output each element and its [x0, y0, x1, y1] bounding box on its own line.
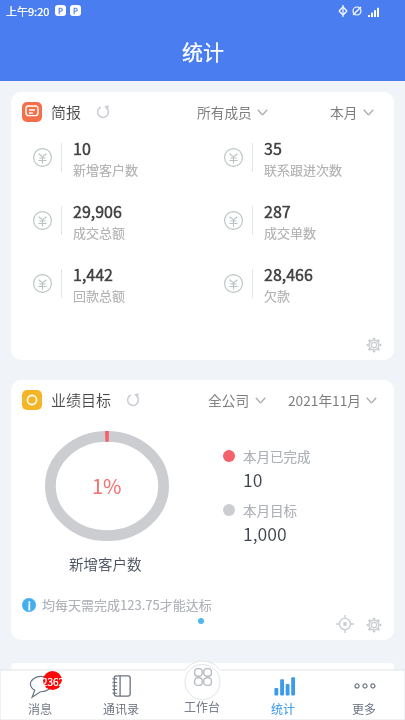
- staticText: 本月: [330, 102, 358, 122]
- staticText: 2362: [36, 674, 70, 688]
- staticText: 联系跟进次数: [264, 160, 343, 179]
- button[interactable]: 刷新: [94, 103, 112, 121]
- staticText: i: [28, 598, 31, 612]
- staticText: 成交总额: [73, 223, 126, 242]
- staticText: 10: [73, 136, 91, 159]
- staticText: 287: [264, 199, 291, 222]
- button[interactable]: 10: [11, 126, 202, 189]
- staticText: 2021年11月: [288, 390, 361, 410]
- staticText: 1,000: [243, 521, 287, 546]
- button[interactable]: 更多: [324, 670, 405, 720]
- staticText: 1%: [92, 471, 122, 500]
- staticText: P: [73, 5, 79, 16]
- staticText: 新增客户数: [69, 553, 199, 574]
- button[interactable]: 本月: [330, 98, 374, 126]
- button[interactable]: 统计: [243, 670, 324, 720]
- staticText: 统计: [182, 36, 224, 66]
- staticText: 欠款: [264, 286, 291, 305]
- staticText: 1,442: [73, 262, 113, 285]
- button[interactable]: 全公司: [208, 386, 266, 414]
- staticText: 简报: [51, 101, 82, 123]
- staticText: 通讯录: [103, 700, 140, 717]
- staticText: 本月目标: [243, 500, 297, 520]
- button[interactable]: 35: [202, 126, 394, 189]
- staticText: 28,466: [264, 262, 313, 285]
- button[interactable]: 2362: [0, 670, 81, 720]
- button[interactable]: 28,466: [202, 252, 394, 315]
- button[interactable]: 1,442: [11, 252, 202, 315]
- staticText: 回款总额: [73, 286, 126, 305]
- staticText: 新增客户数: [73, 160, 139, 179]
- staticText: 统计: [271, 700, 296, 717]
- staticText: 均每天需完成123.75才能达标: [42, 595, 212, 614]
- staticText: 本月已完成: [243, 446, 311, 466]
- button[interactable]: 刷新: [124, 391, 142, 409]
- staticText: 成交单数: [264, 223, 317, 242]
- button[interactable]: 2021年11月: [288, 386, 377, 414]
- button[interactable]: 设置: [363, 614, 385, 636]
- button[interactable]: 287: [202, 189, 394, 252]
- button[interactable]: 29,906: [11, 189, 202, 252]
- button[interactable]: 工作台: [162, 670, 243, 720]
- staticText: 消息: [28, 700, 53, 717]
- staticText: 业绩目标: [51, 389, 112, 411]
- button[interactable]: 设置: [363, 334, 385, 356]
- staticText: P: [58, 5, 64, 16]
- button[interactable]: 通讯录: [81, 670, 162, 720]
- staticText: 所有成员: [197, 102, 252, 122]
- button[interactable]: 定位: [334, 613, 356, 635]
- staticText: 35: [264, 136, 282, 159]
- staticText: 上午9:20: [6, 3, 50, 19]
- staticText: 29,906: [73, 199, 122, 222]
- button[interactable]: 所有成员: [197, 98, 268, 126]
- staticText: 全公司: [208, 390, 250, 410]
- button[interactable]: i: [22, 595, 212, 614]
- staticText: 工作台: [184, 698, 221, 715]
- staticText: 10: [243, 467, 263, 492]
- staticText: 更多: [352, 700, 377, 717]
